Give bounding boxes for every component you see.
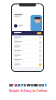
- button[interactable]: [12, 45, 43, 49]
- button[interactable]: [12, 31, 43, 35]
- button[interactable]: [12, 49, 43, 53]
- button[interactable]: [12, 63, 43, 67]
- button[interactable]: [12, 40, 43, 44]
- staticText: Simple & Easy to Follow: [8, 89, 47, 93]
- button[interactable]: [12, 36, 43, 40]
- button[interactable]: [12, 54, 43, 58]
- button[interactable]: [12, 58, 43, 62]
- staticText: 50 DAYS WORKOUT: [8, 83, 47, 87]
